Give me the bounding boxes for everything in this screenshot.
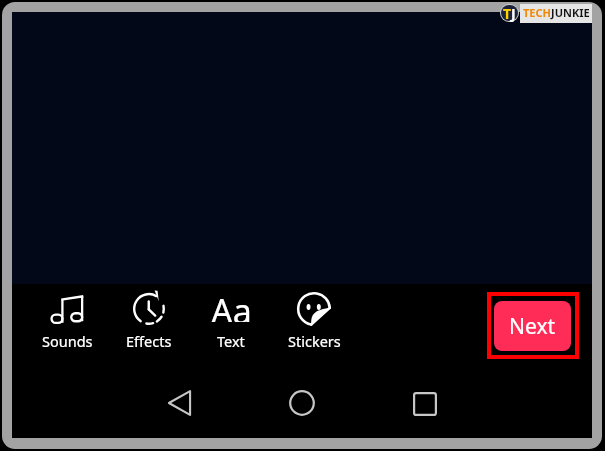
staticText: JUNKIE bbox=[551, 5, 590, 20]
staticText: Effects bbox=[126, 331, 172, 351]
staticText: T bbox=[503, 4, 512, 23]
staticText: Stickers bbox=[288, 331, 341, 351]
button[interactable]: Recent apps bbox=[412, 391, 438, 417]
staticText: J bbox=[511, 4, 516, 23]
button[interactable]: Home bbox=[289, 390, 315, 416]
staticText: Next bbox=[509, 312, 556, 341]
staticText: Sounds bbox=[42, 331, 93, 351]
button[interactable]: Effects bbox=[114, 292, 184, 351]
button[interactable]: Next bbox=[494, 301, 571, 351]
staticText: Aa bbox=[211, 288, 252, 322]
button[interactable]: Stickers bbox=[279, 292, 349, 351]
button[interactable]: Aa bbox=[196, 292, 266, 351]
button[interactable]: Back bbox=[166, 390, 192, 416]
staticText: Text bbox=[217, 331, 245, 351]
button[interactable]: Sounds bbox=[32, 292, 102, 351]
staticText: TECH bbox=[523, 5, 551, 20]
